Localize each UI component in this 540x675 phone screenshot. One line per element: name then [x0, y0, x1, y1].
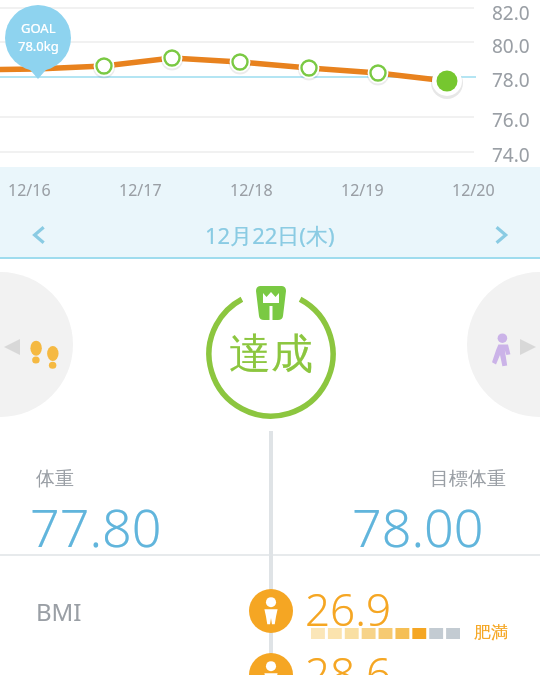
staticText: 78.0kg: [18, 37, 59, 55]
staticText: 12/20: [452, 179, 495, 201]
other: Steps: [26, 331, 70, 375]
staticText: 82.0: [492, 0, 530, 26]
staticText: 80.0: [492, 33, 530, 59]
staticText: 12/16: [8, 179, 51, 201]
staticText: 12/17: [119, 179, 162, 201]
button[interactable]: [0, 272, 73, 417]
staticText: 12/19: [341, 179, 384, 201]
staticText: 78.0: [492, 67, 530, 93]
staticText: 達成: [229, 328, 313, 381]
button[interactable]: 12月22日(木): [205, 220, 335, 250]
button[interactable]: Next day: [476, 212, 526, 257]
staticText: GOAL: [21, 19, 56, 37]
staticText: 体重: [36, 467, 74, 491]
staticText: 76.0: [492, 107, 530, 133]
staticText: 74.0: [492, 142, 530, 168]
staticText: 目標体重: [430, 467, 506, 491]
staticText: 78.00: [352, 491, 484, 562]
staticText: 28.6: [305, 643, 392, 675]
button[interactable]: Previous day: [14, 212, 64, 257]
button[interactable]: 達成: [206, 289, 336, 419]
staticText: 77.80: [30, 491, 162, 562]
staticText: BMI: [36, 595, 82, 628]
staticText: 26.9: [305, 579, 392, 639]
other: Activity: [484, 331, 524, 371]
staticText: 12月22日(木): [205, 220, 335, 250]
other: BMI person: [249, 589, 293, 633]
staticText: 12/18: [230, 179, 273, 201]
button[interactable]: [467, 272, 540, 417]
staticText: 肥満: [474, 622, 508, 643]
